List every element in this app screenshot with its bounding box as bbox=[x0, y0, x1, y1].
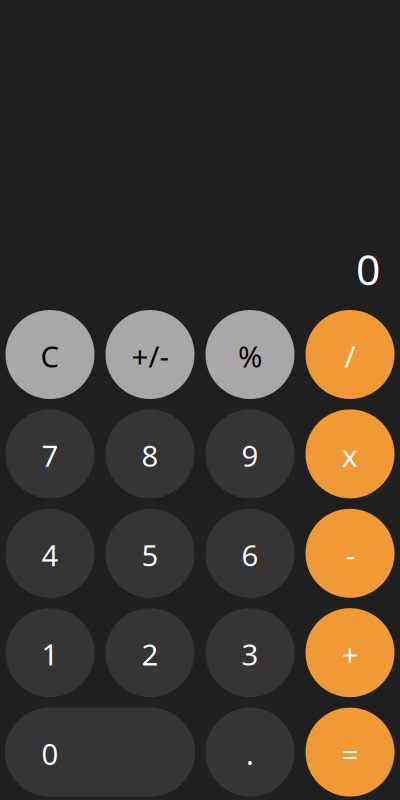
button[interactable]: 3 bbox=[205, 608, 295, 697]
staticText: 7 bbox=[41, 436, 58, 475]
staticText: 0 bbox=[356, 240, 380, 297]
staticText: 2 bbox=[141, 635, 158, 674]
button[interactable]: 1 bbox=[5, 608, 95, 697]
button[interactable]: Percent bbox=[205, 310, 295, 399]
button[interactable]: 5 bbox=[105, 509, 195, 598]
button[interactable]: 7 bbox=[5, 409, 95, 498]
staticText: % bbox=[238, 336, 262, 375]
button[interactable]: 9 bbox=[205, 409, 295, 498]
button[interactable]: Multiply bbox=[305, 409, 395, 498]
staticText: 6 bbox=[241, 535, 258, 574]
button[interactable]: Plus bbox=[305, 608, 395, 697]
staticText: 9 bbox=[241, 436, 258, 475]
button[interactable]: Clear bbox=[5, 310, 95, 399]
staticText: + bbox=[341, 635, 358, 674]
staticText: 4 bbox=[41, 535, 58, 574]
staticText: = bbox=[341, 734, 358, 773]
button[interactable]: 6 bbox=[205, 509, 295, 598]
button[interactable]: 2 bbox=[105, 608, 195, 697]
button[interactable]: 8 bbox=[105, 409, 195, 498]
staticText: 1 bbox=[41, 635, 58, 674]
button[interactable]: Minus bbox=[305, 509, 395, 598]
staticText: x bbox=[342, 436, 358, 475]
staticText: 8 bbox=[141, 436, 158, 475]
button[interactable]: Plus minus bbox=[105, 310, 195, 399]
button[interactable]: 0 bbox=[5, 708, 195, 797]
staticText: . bbox=[246, 734, 254, 773]
staticText: 5 bbox=[141, 535, 158, 574]
button[interactable]: Decimal point bbox=[205, 708, 295, 797]
staticText: 0 bbox=[41, 734, 58, 773]
staticText: 3 bbox=[241, 635, 258, 674]
button[interactable]: 4 bbox=[5, 509, 95, 598]
staticText: - bbox=[345, 535, 354, 574]
button[interactable]: Divide bbox=[305, 310, 395, 399]
staticText: +/- bbox=[131, 336, 168, 375]
staticText: / bbox=[344, 336, 355, 375]
staticText: C bbox=[40, 336, 59, 375]
button[interactable]: Equals bbox=[305, 708, 395, 797]
